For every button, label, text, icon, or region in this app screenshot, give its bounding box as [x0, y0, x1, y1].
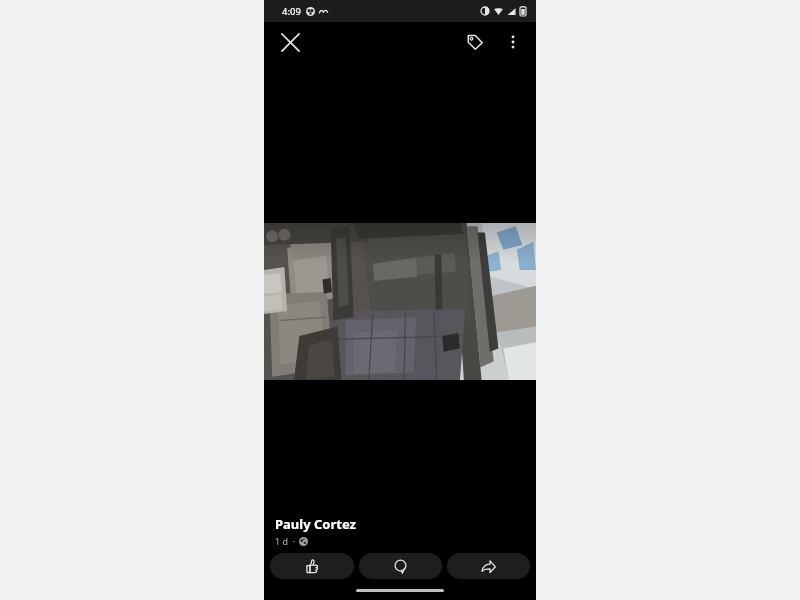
- button[interactable]: Close: [270, 22, 310, 62]
- button[interactable]: Comment: [359, 553, 442, 579]
- staticText: Pauly Cortez: [275, 515, 356, 533]
- button[interactable]: Tag: [456, 23, 494, 61]
- staticText: 4:09: [282, 5, 301, 18]
- button[interactable]: More options: [494, 23, 532, 61]
- staticText: 1 d ·: [275, 535, 296, 547]
- button[interactable]: Like: [270, 553, 354, 579]
- button[interactable]: Share: [447, 553, 530, 579]
